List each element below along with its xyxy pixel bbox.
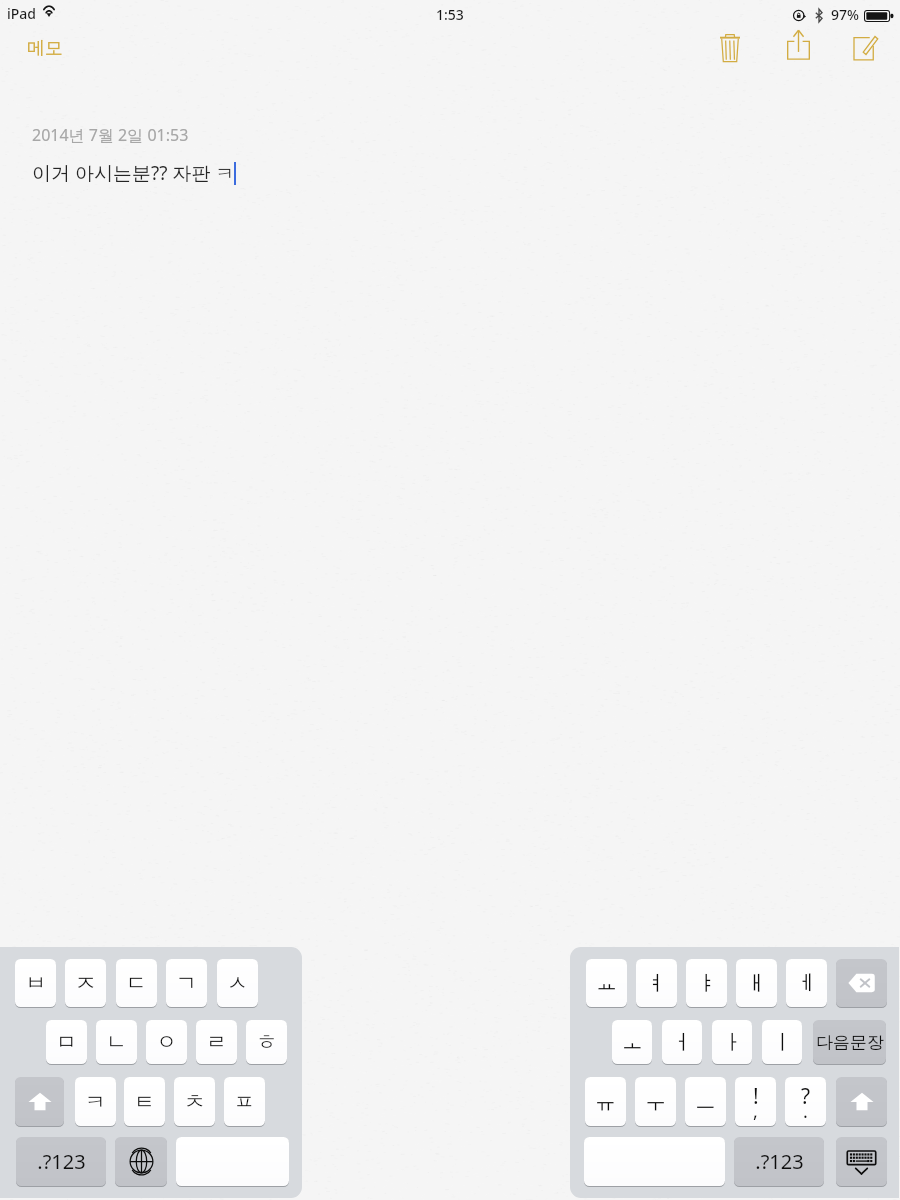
button[interactable]: ㅂ [15,959,56,1007]
button[interactable]: Exclamation mark / comma [735,1077,776,1126]
staticText: ㅣ [772,1029,793,1055]
staticText: .?123 [37,1148,86,1175]
staticText: , [753,1099,758,1124]
staticText: ㅡ [695,1089,716,1115]
button[interactable]: ㅑ [686,959,727,1007]
staticText: ㅔ [796,970,817,996]
staticText: .?123 [755,1148,804,1175]
button[interactable]: ㅋ [75,1077,116,1126]
staticText: 97% [831,5,859,24]
button[interactable]: ㅊ [174,1077,215,1126]
button[interactable]: Switch keyboard language [115,1137,167,1186]
staticText: ㅂ [25,970,46,996]
staticText: 메모 [27,37,63,60]
staticText: ㄱ [176,970,197,996]
button[interactable]: 다음문장 [813,1020,886,1064]
button[interactable]: .?123 [16,1137,106,1186]
button[interactable]: ㅡ [685,1077,726,1126]
button[interactable]: Hide keyboard [836,1137,887,1186]
button[interactable]: ㅜ [635,1077,676,1126]
staticText: ㅁ [56,1029,77,1055]
staticText: ! [753,1082,759,1111]
staticText: ㅊ [184,1089,205,1115]
staticText: ㄹ [206,1029,227,1055]
staticText: 다음문장 [816,1032,884,1053]
button[interactable]: ㅗ [612,1020,652,1064]
button[interactable]: ㅠ [585,1077,626,1126]
staticText: iPad [7,4,37,23]
staticText: ㄷ [126,970,147,996]
staticText: ㅓ [672,1029,693,1055]
button[interactable]: ㅔ [786,959,827,1007]
button[interactable]: ㅕ [636,959,677,1007]
button[interactable]: ㄷ [116,959,157,1007]
staticText: ? [801,1082,811,1111]
button[interactable]: Delete note [710,28,750,68]
staticText: ㅏ [722,1029,743,1055]
staticText: ㅍ [234,1089,255,1115]
button[interactable]: ㅇ [146,1020,187,1064]
button[interactable]: ㅐ [736,959,777,1007]
staticText: ㅑ [696,970,717,996]
button[interactable]: Space [584,1137,725,1186]
button[interactable]: ㅓ [662,1020,702,1064]
button[interactable]: ㄱ [166,959,207,1007]
staticText: . [803,1099,808,1124]
button[interactable]: ㅏ [712,1020,752,1064]
staticText: ㅛ [596,970,617,996]
staticText: ㅇ [156,1029,177,1055]
button[interactable]: ㅣ [762,1020,802,1064]
staticText: ㅈ [75,970,96,996]
button[interactable]: ㄴ [96,1020,137,1064]
button[interactable]: ㅎ [246,1020,287,1064]
staticText: ㅅ [227,970,248,996]
button[interactable]: ㅍ [224,1077,265,1126]
staticText: 이거 아시는분?? 자판 ㅋ [32,160,235,186]
staticText: 2014년 7월 2일 01:53 [32,124,189,146]
staticText: 1:53 [436,5,464,24]
button[interactable]: Shift [836,1077,887,1126]
staticText: ㅋ [85,1089,106,1115]
staticText: ㅕ [646,970,667,996]
staticText: ㄴ [106,1029,127,1055]
staticText: ㅗ [622,1029,643,1055]
button[interactable]: ㄹ [196,1020,237,1064]
staticText: ㅜ [645,1089,666,1115]
button[interactable]: Question mark / period [785,1077,826,1126]
button[interactable]: Share [776,22,820,66]
staticText: ㅌ [134,1089,155,1115]
button[interactable]: New note [844,27,886,69]
button[interactable]: Shift [15,1077,64,1126]
button[interactable]: ㅛ [586,959,627,1007]
staticText: ㅎ [256,1029,277,1055]
button[interactable]: ㅌ [124,1077,165,1126]
button[interactable]: Backspace [836,959,887,1007]
button[interactable]: ㅁ [46,1020,87,1064]
button[interactable]: ㅅ [217,959,258,1007]
button[interactable]: ㅈ [65,959,106,1007]
staticText: ㅠ [595,1089,616,1115]
button[interactable]: .?123 [734,1137,824,1186]
button[interactable]: 메모 [19,32,71,65]
button[interactable]: Space [176,1137,289,1186]
staticText: ㅐ [746,970,767,996]
